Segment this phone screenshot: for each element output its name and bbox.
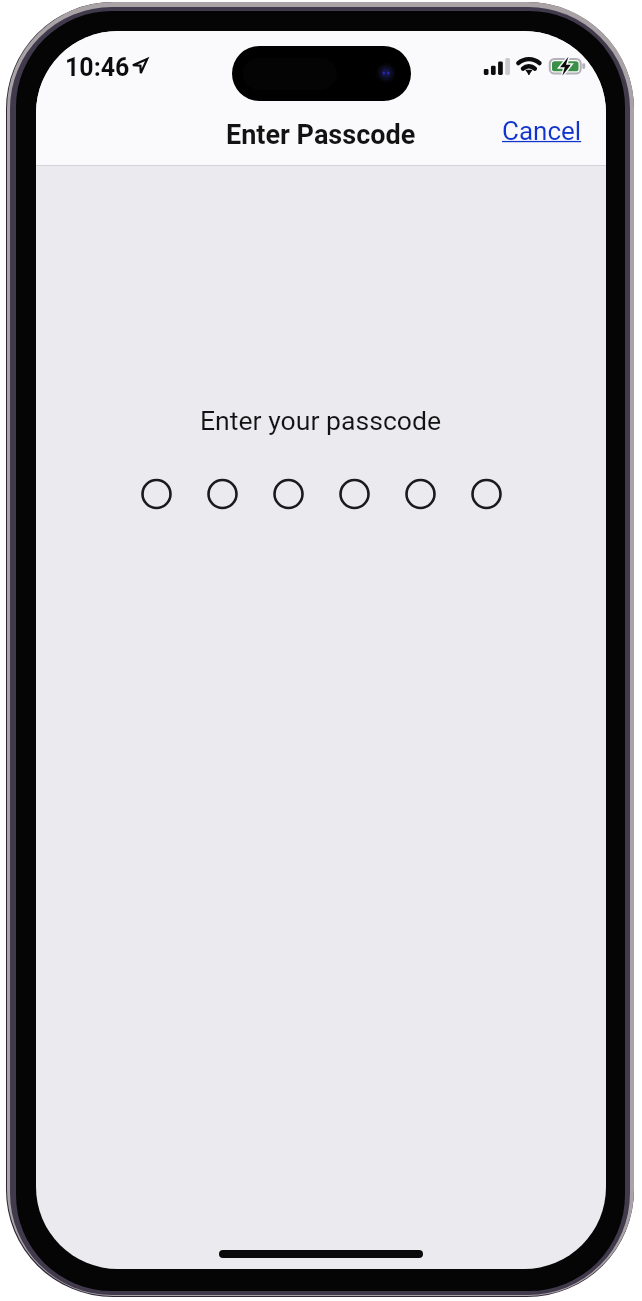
button[interactable]: Passcode entry field bbox=[151, 474, 526, 514]
staticText: Cancel bbox=[502, 116, 582, 146]
staticText: Enter your passcode bbox=[200, 405, 442, 436]
staticText: Enter Passcode bbox=[226, 119, 416, 151]
button[interactable]: Cancel bbox=[486, 107, 598, 155]
staticText: 10:46 bbox=[65, 53, 130, 82]
